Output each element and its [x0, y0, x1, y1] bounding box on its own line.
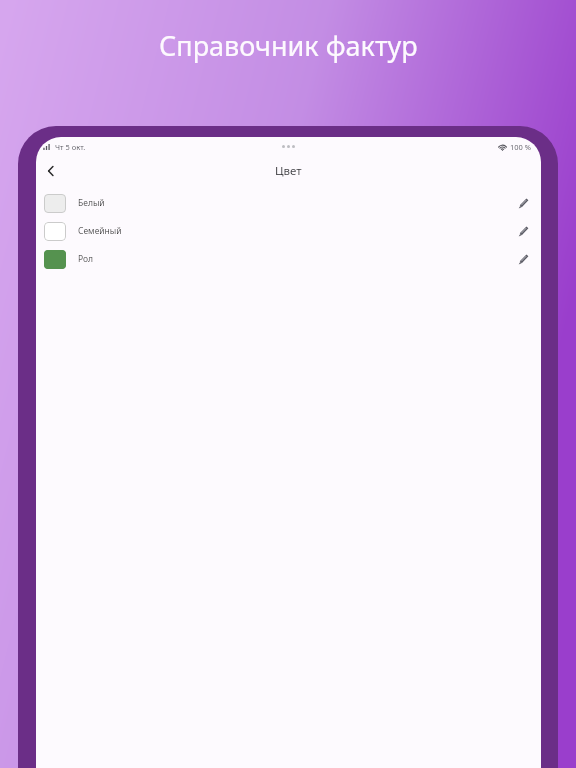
- staticText: Семейный: [78, 225, 122, 237]
- button[interactable]: Изменить: [510, 218, 536, 244]
- button[interactable]: Изменить: [510, 190, 536, 216]
- button[interactable]: Белый: [36, 189, 541, 217]
- button[interactable]: Рол: [36, 245, 541, 273]
- staticText: Справочник фактур: [159, 27, 418, 64]
- staticText: Белый: [78, 197, 105, 209]
- staticText: 100 %: [510, 142, 532, 152]
- button[interactable]: Назад: [36, 156, 66, 186]
- button[interactable]: Изменить: [510, 246, 536, 272]
- button[interactable]: Семейный: [36, 217, 541, 245]
- staticText: Чт 5 окт.: [55, 142, 86, 152]
- staticText: Цвет: [275, 163, 302, 179]
- staticText: Рол: [78, 253, 94, 265]
